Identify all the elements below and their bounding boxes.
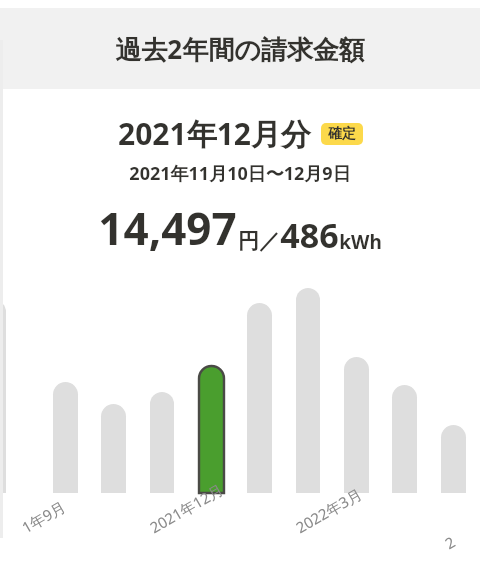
staticText: 2021年11月10日〜12月9日 <box>129 161 351 186</box>
staticText: 確定 <box>328 125 356 143</box>
staticText: 14,497 <box>98 198 237 258</box>
staticText: 過去2年間の請求金額 <box>115 31 365 67</box>
staticText: 円／ <box>238 228 280 254</box>
button[interactable]: 過去2年間の請求金額 <box>0 8 480 89</box>
staticText: 486 <box>280 212 339 258</box>
staticText: kWh <box>339 229 382 255</box>
button[interactable]: 確定 <box>321 123 363 145</box>
staticText: 2021年12月分 <box>118 113 311 154</box>
